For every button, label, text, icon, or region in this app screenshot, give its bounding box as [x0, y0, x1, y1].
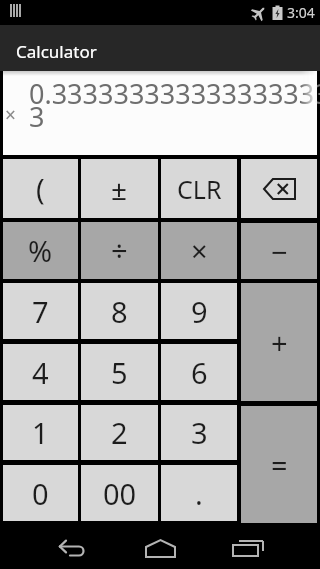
button[interactable]: 3 [161, 405, 237, 460]
staticText: % [28, 231, 53, 270]
staticText: CLR [177, 172, 222, 206]
staticText: ( [36, 169, 45, 208]
staticText: 7 [32, 292, 49, 331]
button[interactable] [37, 523, 107, 569]
staticText: 0 [32, 474, 49, 513]
staticText: 5 [111, 353, 128, 392]
button[interactable]: 7 [3, 283, 78, 339]
staticText: 1 [32, 413, 49, 452]
staticText: − [271, 232, 288, 271]
button[interactable]: CLR [161, 159, 237, 218]
button[interactable]: ( [3, 159, 78, 218]
button[interactable]: ÷ [81, 222, 158, 279]
button[interactable]: 9 [161, 283, 237, 339]
button[interactable]: 5 [81, 344, 158, 400]
staticText: 2 [111, 413, 128, 452]
staticText: = [271, 445, 288, 484]
button[interactable]: ± [81, 159, 158, 218]
staticText: 3 [191, 413, 208, 452]
button[interactable]: 00 [81, 465, 158, 521]
staticText: Calculator [16, 40, 97, 63]
button[interactable] [125, 523, 195, 569]
button[interactable]: 0 [3, 465, 78, 521]
staticText: 3 [29, 98, 45, 135]
button[interactable]: 2 [81, 405, 158, 460]
staticText: 4 [32, 353, 49, 392]
staticText: 8 [111, 292, 128, 331]
button[interactable]: % [3, 222, 78, 279]
staticText: 9 [191, 292, 208, 331]
button[interactable]: 1 [3, 405, 78, 460]
button[interactable]: × [161, 222, 237, 279]
button[interactable] [213, 523, 283, 569]
staticText: 00 [103, 474, 137, 513]
button[interactable]: 4 [3, 344, 78, 400]
button[interactable]: 8 [81, 283, 158, 339]
staticText: + [271, 323, 288, 362]
staticText: 0.333333333333333333333 [29, 75, 320, 112]
staticText: 6 [191, 353, 208, 392]
button[interactable]: = [241, 406, 317, 523]
button[interactable]: − [241, 223, 317, 279]
staticText: ÷ [111, 231, 128, 270]
button[interactable]: . [161, 465, 237, 521]
staticText: × [5, 102, 16, 128]
button[interactable]: 6 [161, 344, 237, 400]
staticText: ± [111, 170, 128, 208]
button[interactable] [241, 159, 317, 218]
staticText: . [195, 474, 203, 513]
staticText: 3:04 [287, 3, 315, 22]
staticText: × [191, 231, 208, 270]
button[interactable]: + [241, 283, 317, 401]
